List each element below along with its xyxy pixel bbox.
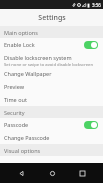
button[interactable]: Time out [0,93,103,106]
button[interactable]: Change Wallpaper [0,67,103,80]
staticText: Time out [4,96,27,103]
staticText: Change Wallpaper [4,70,52,77]
staticText: Enable Lock [4,41,84,48]
staticText: Disable lockscreen system [4,54,72,61]
staticText: Passcode [4,121,84,128]
button[interactable]: Home [43,164,61,182]
staticText: 3:56 [92,2,101,8]
button[interactable]: Change Passcode [0,131,103,144]
staticText: Set none or swipe to avoid disable locks… [4,62,94,67]
staticText: Settings [38,13,66,23]
button[interactable]: Passcode [0,118,103,131]
button[interactable]: Back [12,164,30,182]
staticText: Main options [4,29,38,36]
staticText: Change Passcode [4,134,50,141]
button[interactable]: Enable Lock [0,38,103,51]
staticText: Visual options [4,147,41,154]
button[interactable]: Recent apps [73,164,91,182]
staticText: Preview [4,83,25,90]
staticText: Security [4,109,25,116]
button[interactable]: Preview [0,80,103,93]
button[interactable]: Disable lockscreen system [0,51,103,67]
